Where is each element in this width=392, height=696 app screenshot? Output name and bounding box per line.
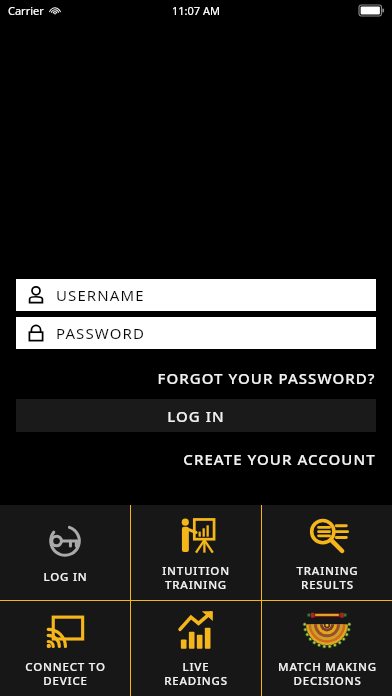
staticText: USERNAME: [56, 285, 145, 305]
staticText: FORGOT YOUR PASSWORD?: [157, 368, 376, 388]
button[interactable]: MATCH MAKING DECISIONS: [262, 601, 392, 696]
staticText: TRAINING RESULTS: [296, 563, 359, 592]
button[interactable]: CREATE YOUR ACCOUNT: [16, 446, 376, 472]
staticText: Carrier: [8, 3, 44, 18]
staticText: MATCH MAKING DECISIONS: [278, 659, 377, 688]
button[interactable]: PASSWORD: [16, 317, 376, 349]
button[interactable]: TRAINING RESULTS: [262, 505, 392, 600]
staticText: PASSWORD: [56, 323, 145, 343]
staticText: LOG IN: [167, 406, 225, 426]
staticText: LIVE READINGS: [164, 659, 228, 688]
button[interactable]: USERNAME: [16, 279, 376, 311]
button[interactable]: LOG IN: [16, 399, 376, 432]
staticText: CONNECT TO DEVICE: [25, 659, 106, 688]
staticText: 11:07 AM: [172, 3, 220, 18]
staticText: INTUITION TRAINING: [162, 563, 230, 592]
button[interactable]: FORGOT YOUR PASSWORD?: [16, 365, 376, 391]
button[interactable]: LOG IN: [0, 505, 130, 600]
staticText: LOG IN: [43, 569, 88, 585]
staticText: CREATE YOUR ACCOUNT: [183, 449, 376, 469]
button[interactable]: LIVE READINGS: [131, 601, 261, 696]
button[interactable]: CONNECT TO DEVICE: [0, 601, 130, 696]
button[interactable]: INTUITION TRAINING: [131, 505, 261, 600]
